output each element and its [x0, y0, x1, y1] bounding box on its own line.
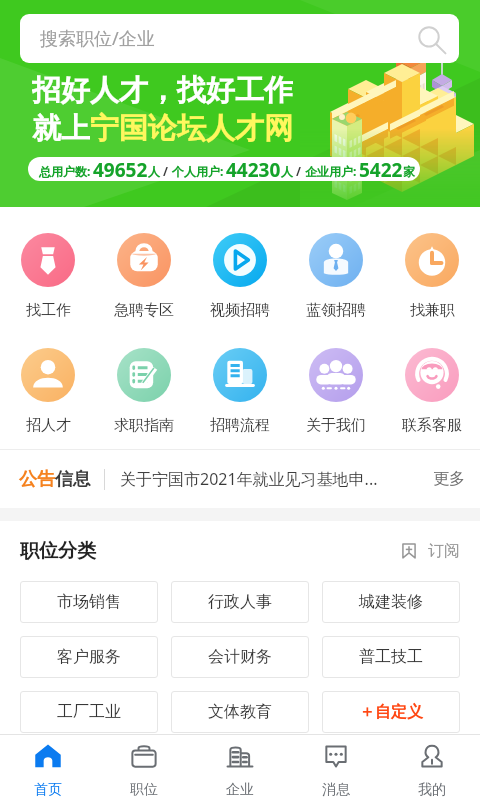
staticText: 宁国论坛人才网 [90, 110, 293, 144]
staticText: 49652 [93, 157, 148, 181]
staticText: 市场销售 [57, 592, 121, 612]
button[interactable]: 客户服务 [20, 636, 158, 678]
staticText: 人 [148, 164, 160, 179]
button[interactable]: 求职指南 [96, 348, 192, 435]
staticText: 文体教育 [208, 702, 272, 722]
staticText: 搜索职位/企业 [40, 26, 155, 51]
staticText: 总用户数: [39, 163, 91, 179]
button[interactable]: 文体教育 [171, 691, 309, 733]
staticText: 求职指南 [114, 416, 174, 435]
staticText: 首页 [34, 781, 62, 799]
button[interactable]: 招聘流程 [192, 348, 288, 435]
button[interactable]: 联系客服 [384, 348, 480, 435]
staticText: 城建装修 [359, 592, 423, 612]
button[interactable]: Profile [384, 735, 480, 800]
staticText: 公告 [19, 468, 55, 491]
staticText: ＋自定义 [359, 702, 423, 722]
staticText: 人 [281, 164, 293, 179]
staticText: 普工技工 [359, 647, 423, 667]
staticText: 企业 [226, 781, 254, 799]
staticText: 信息 [55, 468, 91, 491]
other: Search [416, 26, 442, 52]
button[interactable]: 普工技工 [322, 636, 460, 678]
button[interactable]: Messages [288, 735, 384, 800]
button[interactable]: Home [0, 735, 96, 800]
staticText: 行政人事 [208, 592, 272, 612]
staticText: 5422 [359, 157, 403, 181]
staticText: 更多 [433, 469, 465, 489]
button[interactable]: 市场销售 [20, 581, 158, 623]
button[interactable]: 找工作 [0, 233, 96, 320]
button[interactable]: 公告 [0, 450, 480, 508]
button[interactable]: 会计财务 [171, 636, 309, 678]
button[interactable]: Jobs [96, 735, 192, 800]
button[interactable]: 招人才 [0, 348, 96, 435]
button[interactable]: 工厂工业 [20, 691, 158, 733]
staticText: 客户服务 [57, 647, 121, 667]
button[interactable]: Companies [192, 735, 288, 800]
staticText: 招聘流程 [210, 416, 270, 435]
staticText: 找工作 [26, 301, 71, 320]
button[interactable]: 行政人事 [171, 581, 309, 623]
staticText: 关于我们 [306, 416, 366, 435]
button[interactable]: 城建装修 [322, 581, 460, 623]
staticText: 工厂工业 [57, 702, 121, 722]
staticText: 会计财务 [208, 647, 272, 667]
staticText: 联系客服 [402, 416, 462, 435]
staticText: 关于宁国市2021年就业见习基地申... [120, 468, 378, 490]
staticText: 视频招聘 [210, 301, 270, 320]
staticText: 我的 [418, 781, 446, 799]
staticText: 招人才 [26, 416, 71, 435]
staticText: 急聘专区 [114, 301, 174, 320]
button[interactable]: 搜索职位/企业 [20, 14, 459, 63]
staticText: / [293, 163, 305, 179]
button[interactable]: 急聘专区 [96, 233, 192, 320]
staticText: 招好人才，找好工作 [32, 72, 293, 106]
staticText: 44230 [226, 157, 281, 181]
staticText: 职位分类 [20, 539, 96, 563]
staticText: 个人用户: [172, 163, 224, 179]
staticText: / [160, 163, 172, 179]
button[interactable]: 订阅 [401, 541, 460, 561]
staticText: 消息 [322, 781, 350, 799]
staticText: 家 [403, 164, 409, 179]
staticText: 企业用户: [305, 163, 357, 179]
staticText: 蓝领招聘 [306, 301, 366, 320]
button[interactable]: ＋自定义 [322, 691, 460, 733]
staticText: 职位 [130, 781, 158, 799]
staticText: 就上 [32, 110, 90, 144]
button[interactable]: 找兼职 [384, 233, 480, 320]
staticText: 找兼职 [410, 301, 455, 320]
button[interactable]: 蓝领招聘 [288, 233, 384, 320]
button[interactable]: 视频招聘 [192, 233, 288, 320]
staticText: 订阅 [428, 541, 460, 561]
button[interactable]: 关于我们 [288, 348, 384, 435]
